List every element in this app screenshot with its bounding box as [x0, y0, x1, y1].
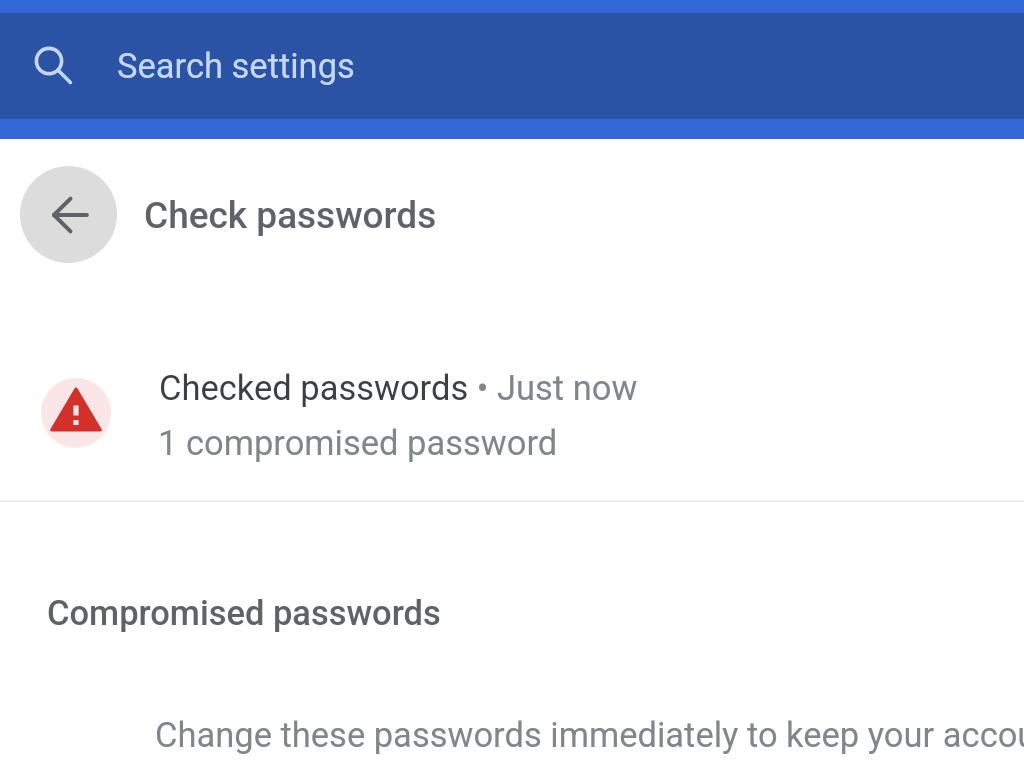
button[interactable]: Navigate up	[20, 166, 117, 263]
staticText: Change these passwords immediately to ke…	[155, 715, 1024, 755]
staticText: Compromised passwords	[47, 593, 441, 633]
staticText: Check passwords	[144, 194, 437, 237]
button[interactable]: Search	[0, 13, 1024, 119]
staticText: Checked passwords • Just now	[159, 368, 638, 408]
staticText: 1 compromised password	[158, 423, 558, 463]
button[interactable]: Checked passwords • Just now	[0, 345, 1024, 498]
other: Search	[27, 39, 77, 89]
staticText: Search settings	[117, 46, 355, 86]
